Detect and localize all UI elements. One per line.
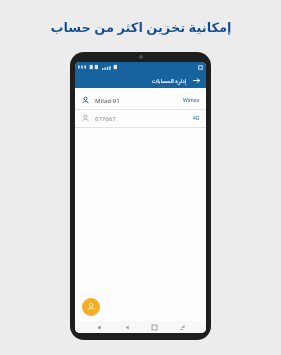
staticText: 4G (193, 115, 200, 122)
staticText: إمكانية تخزين اكثر من حساب (50, 18, 232, 36)
button[interactable]: Back (192, 76, 201, 85)
button[interactable]: Recents (178, 323, 186, 331)
button[interactable]: Back (123, 323, 131, 331)
staticText: Milad-91 (95, 97, 120, 105)
staticText: 677667 (95, 115, 116, 123)
button[interactable]: Add account (82, 298, 100, 316)
staticText: Wimax (183, 97, 200, 104)
button[interactable]: 677667 (75, 110, 206, 127)
button[interactable]: Milad-91 (75, 92, 206, 109)
button[interactable]: Home (150, 323, 158, 331)
staticText: إدارة الحسابات (152, 77, 187, 84)
button[interactable]: Assistant (95, 323, 103, 331)
